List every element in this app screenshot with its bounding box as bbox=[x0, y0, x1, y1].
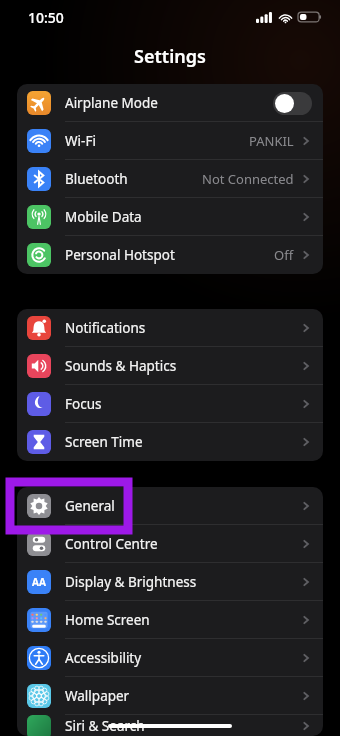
staticText: Home Screen bbox=[65, 611, 150, 629]
button[interactable]: Notifications bbox=[17, 309, 323, 347]
button[interactable]: Screen Time bbox=[17, 423, 323, 461]
button[interactable]: General bbox=[17, 487, 323, 525]
button[interactable]: Airplane Mode toggle bbox=[273, 92, 312, 115]
staticText: Off bbox=[274, 246, 294, 264]
staticText: Airplane Mode bbox=[65, 94, 158, 112]
staticText: Not Connected bbox=[202, 170, 294, 188]
staticText: Mobile Data bbox=[65, 208, 142, 226]
staticText: Wallpaper bbox=[65, 687, 130, 705]
button[interactable]: Wi-Fi bbox=[17, 122, 323, 160]
staticText: Control Centre bbox=[65, 535, 158, 553]
button[interactable]: Home Screen bbox=[17, 601, 323, 639]
button[interactable]: Mobile Data bbox=[17, 198, 323, 236]
staticText: AA bbox=[32, 575, 46, 589]
button[interactable]: Control Centre bbox=[17, 525, 323, 563]
button[interactable]: Personal Hotspot bbox=[17, 236, 323, 274]
staticText: Focus bbox=[65, 395, 102, 413]
staticText: 10:50 bbox=[28, 8, 64, 27]
button[interactable]: Siri & Search bbox=[17, 715, 323, 736]
button[interactable]: Airplane Mode bbox=[17, 84, 323, 122]
staticText: Personal Hotspot bbox=[65, 246, 175, 264]
staticText: Siri & Search bbox=[65, 717, 145, 735]
staticText: Notifications bbox=[65, 319, 146, 337]
staticText: Bluetooth bbox=[65, 170, 128, 188]
staticText: Screen Time bbox=[65, 433, 143, 451]
staticText: PANKIL bbox=[249, 132, 294, 150]
staticText: Display & Brightness bbox=[65, 573, 197, 591]
staticText: General bbox=[65, 497, 115, 515]
button[interactable]: Bluetooth bbox=[17, 160, 323, 198]
staticText: Sounds & Haptics bbox=[65, 357, 177, 375]
staticText: Accessibility bbox=[65, 649, 142, 667]
button[interactable]: Accessibility bbox=[17, 639, 323, 677]
button[interactable]: Sounds & Haptics bbox=[17, 347, 323, 385]
button[interactable]: Focus bbox=[17, 385, 323, 423]
staticText: Settings bbox=[134, 44, 206, 69]
button[interactable]: AA bbox=[17, 563, 323, 601]
button[interactable]: Wallpaper bbox=[17, 677, 323, 715]
staticText: Wi-Fi bbox=[65, 132, 96, 150]
